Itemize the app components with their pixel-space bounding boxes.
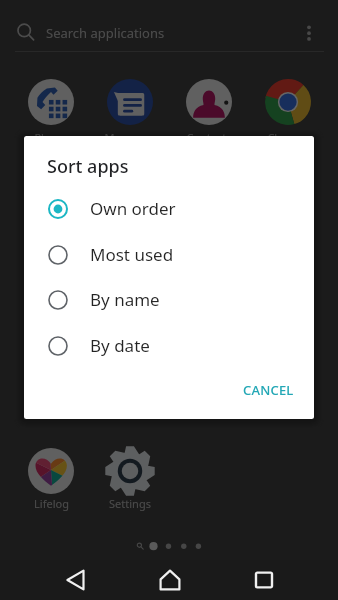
button[interactable] xyxy=(260,74,316,130)
button[interactable] xyxy=(23,443,79,499)
staticText: Chrome xyxy=(267,130,309,145)
staticText: By date xyxy=(90,334,150,357)
staticText: Settings xyxy=(109,496,151,511)
button[interactable]: Own order xyxy=(24,186,314,231)
staticText: Lifelog xyxy=(34,496,69,511)
staticText: Own order xyxy=(90,197,176,220)
staticText: Messages xyxy=(104,130,156,145)
staticText: Most used xyxy=(90,243,174,266)
button[interactable]: Most used xyxy=(24,232,314,277)
button[interactable] xyxy=(102,74,158,130)
staticText: Contacts xyxy=(186,130,232,145)
button[interactable]: More options xyxy=(295,13,323,41)
button[interactable] xyxy=(102,443,158,499)
button[interactable]: Recents xyxy=(241,557,286,600)
staticText: CANCEL xyxy=(243,381,294,399)
staticText: Search applications xyxy=(46,24,165,42)
staticText: Phone xyxy=(34,130,68,145)
button[interactable] xyxy=(181,74,237,130)
button[interactable]: CANCEL xyxy=(231,371,305,409)
staticText: By name xyxy=(90,288,160,311)
button[interactable]: Back xyxy=(53,557,98,600)
button[interactable]: Search applications xyxy=(8,10,288,52)
button[interactable] xyxy=(23,74,79,130)
button[interactable]: By name xyxy=(24,277,314,322)
button[interactable]: By date xyxy=(24,323,314,368)
staticText: Sort apps xyxy=(47,154,129,179)
button[interactable]: Home xyxy=(147,557,192,600)
